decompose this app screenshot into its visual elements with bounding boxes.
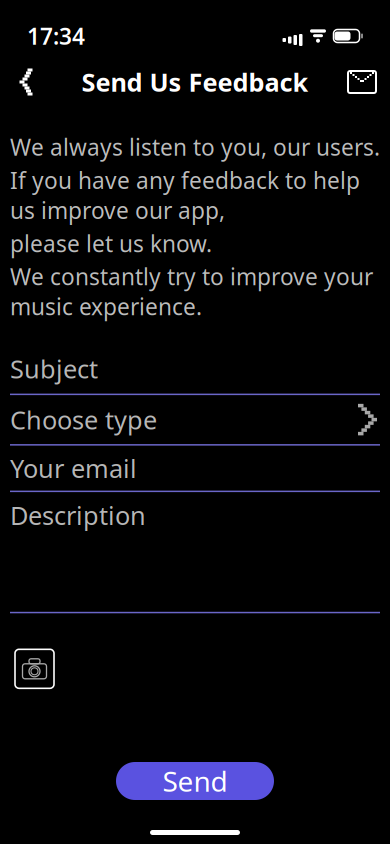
button[interactable]: Your email xyxy=(0,446,390,491)
staticText: If you have any feedback to help us impr… xyxy=(10,165,360,225)
button[interactable]: Send xyxy=(116,762,274,800)
staticText: We always listen to you, our users. xyxy=(10,132,380,162)
staticText: Your email xyxy=(10,451,137,485)
button[interactable]: Description xyxy=(0,492,390,538)
button[interactable]: Choose type xyxy=(0,395,390,444)
button[interactable]: Back xyxy=(6,60,50,104)
button[interactable]: Subject xyxy=(0,344,390,394)
staticText: Description xyxy=(10,498,146,532)
staticText: Choose type xyxy=(10,403,157,436)
staticText: We constantly try to improve your music … xyxy=(10,261,373,322)
button[interactable]: Attach photo xyxy=(15,649,54,688)
staticText: Send xyxy=(162,762,227,800)
staticText: Send Us Feedback xyxy=(81,65,308,99)
staticText: 17:34 xyxy=(27,21,85,51)
button[interactable]: Contact by email xyxy=(340,60,384,104)
staticText: Subject xyxy=(10,352,98,385)
staticText: please let us know. xyxy=(10,228,212,258)
